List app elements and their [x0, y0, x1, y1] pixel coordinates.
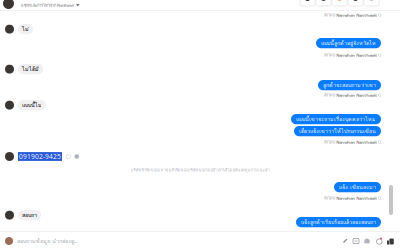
staticText: ส่งโดย [324, 139, 335, 145]
staticText: แบบนี้ลูกค้าอยู่จังหวัดไห [321, 39, 376, 47]
button[interactable]: Translate [332, 0, 347, 6]
button[interactable]: Choose a GIF [353, 238, 359, 244]
staticText: ไม่ได้มี [22, 65, 39, 73]
button[interactable]: Password manager [316, 0, 331, 6]
staticText: Nanwhan Nanthawit [336, 52, 377, 58]
staticText: สอบถา [22, 211, 37, 219]
button[interactable]: More tools [364, 0, 379, 6]
button[interactable]: Choose a sticker [364, 238, 370, 244]
staticText: แจ้งลูกค้าเรียบร้อยแล้วลองสอบถา [301, 218, 376, 226]
button[interactable]: ลูกค้าจะสอบถามว่าเขา [318, 80, 381, 90]
button[interactable]: แบบนี้ลูกค้าอยู่จังหวัดไห [316, 38, 381, 48]
staticText: บริษัทจำกัดของมหาชนจำกัดของบริษัทของโดยม… [130, 167, 269, 173]
staticText: ส่งโดย [324, 92, 335, 98]
button[interactable]: ไม่ได้มี [18, 64, 43, 74]
staticText: แจ้ง เขียนลงมา [339, 183, 376, 191]
button[interactable]: แชทและการโทรจาก Nanthawit [21, 2, 80, 8]
button[interactable]: เดี๋ยวแจ้งเขาว่าให้ไปรบกวนเขียน [294, 126, 381, 136]
button[interactable]: แบบนี้ไม [18, 100, 46, 110]
button[interactable]: Send a like [387, 237, 394, 244]
staticText: ลูกค้าจะสอบถามว่าเขา [323, 81, 376, 89]
staticText: Nanwhan Nanthawit [336, 139, 377, 145]
button[interactable]: แจ้งลูกค้าเรียบร้อยแล้วลองสอบถา [296, 217, 381, 227]
staticText: Nanwhan Nanthawit [336, 12, 377, 18]
staticText: แบบนี้เขาจะถามเรื่องบุคคลว่าไหม [296, 115, 376, 123]
button[interactable]: Choose an emoji [375, 237, 382, 244]
button[interactable]: ไม่ [18, 24, 33, 34]
staticText: Nanwhan Nanthawit [336, 195, 377, 201]
button[interactable]: Attach file [342, 238, 348, 244]
staticText: เดี๋ยวแจ้งเขาว่าให้ไปรบกวนเขียน [299, 127, 376, 135]
button[interactable]: สอบถา [18, 210, 41, 220]
button[interactable]: Notes [348, 0, 363, 6]
staticText: แบบนี้ไม [22, 101, 42, 109]
staticText: แชทและการโทรจาก Nanthawit [21, 2, 74, 8]
staticText: ส่งโดย [324, 12, 335, 18]
staticText: ส่งโดย [324, 195, 335, 201]
staticText: ส่งโดย [324, 52, 335, 58]
button[interactable]: แบบนี้เขาจะถามเรื่องบุคคลว่าไหม [291, 114, 381, 124]
button[interactable]: สอบถามข้อมูล นำกล่องดู... [17, 237, 77, 245]
staticText: Nanwhan Nanthawit [336, 92, 377, 98]
button[interactable]: Extension [300, 0, 315, 6]
staticText: สอบถามข้อมูล นำกล่องดู... [17, 237, 77, 245]
button[interactable]: แจ้ง เขียนลงมา [334, 182, 381, 192]
staticText: 091902-9425 [19, 152, 61, 161]
staticText: ไม่ [22, 25, 29, 33]
